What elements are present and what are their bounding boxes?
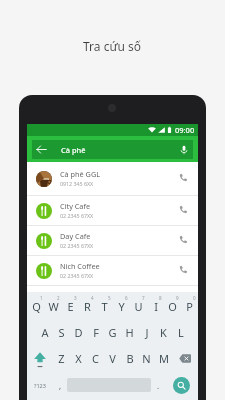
staticText: T xyxy=(101,299,108,314)
button[interactable]: J xyxy=(138,319,155,345)
staticText: B xyxy=(126,351,134,366)
staticText: U xyxy=(134,299,143,314)
button[interactable]: 0 xyxy=(181,293,198,319)
button[interactable]: C xyxy=(87,345,104,372)
staticText: 0 xyxy=(193,295,196,301)
staticText: W xyxy=(48,299,59,314)
staticText: N xyxy=(142,351,151,366)
staticText: 3 xyxy=(74,295,77,301)
button[interactable]: Shift xyxy=(27,345,53,372)
button[interactable]: 5 xyxy=(96,293,113,319)
button[interactable]: V xyxy=(104,345,121,372)
staticText: Cà phê xyxy=(61,145,86,155)
staticText: M xyxy=(159,351,169,366)
button[interactable]: Search xyxy=(173,377,190,394)
button[interactable]: N xyxy=(138,345,155,372)
button[interactable]: L xyxy=(172,319,189,345)
staticText: Z xyxy=(58,351,65,366)
button[interactable]: 8 xyxy=(147,293,164,319)
staticText: E xyxy=(67,299,74,314)
button[interactable]: Call xyxy=(174,260,192,278)
button[interactable]: 9 xyxy=(164,293,181,319)
staticText: 5 xyxy=(108,295,111,301)
staticText: I xyxy=(154,299,158,314)
staticText: 8 xyxy=(159,295,162,301)
staticText: J xyxy=(145,325,149,340)
button[interactable]: Cà phê GGL xyxy=(27,162,198,196)
button[interactable]: B xyxy=(121,345,138,372)
button[interactable]: K xyxy=(155,319,172,345)
button[interactable]: F xyxy=(87,319,104,345)
button[interactable]: Day Cafe xyxy=(27,226,198,256)
staticText: 2 xyxy=(57,295,60,301)
staticText: Q xyxy=(32,299,41,314)
button[interactable]: 2 xyxy=(45,293,62,319)
button[interactable]: 7 xyxy=(130,293,147,319)
staticText: 0912 345 6XX xyxy=(60,180,94,187)
button[interactable]: 3 xyxy=(62,293,79,319)
staticText: O xyxy=(168,299,177,314)
button[interactable]: . xyxy=(151,375,165,395)
button[interactable]: Call xyxy=(174,168,192,186)
button[interactable]: 4 xyxy=(79,293,96,319)
staticText: P xyxy=(186,299,193,314)
staticText: X xyxy=(75,351,82,366)
button[interactable]: Voice search xyxy=(174,140,193,159)
button[interactable]: Z xyxy=(53,345,70,372)
staticText: A xyxy=(41,325,49,340)
staticText: Nich Coffee xyxy=(60,261,100,271)
staticText: R xyxy=(84,299,91,314)
button[interactable]: H xyxy=(121,319,138,345)
staticText: 02 2345 67XX xyxy=(60,272,94,279)
staticText: 02 2345 67XX xyxy=(60,242,94,249)
button[interactable]: 6 xyxy=(113,293,130,319)
staticText: G xyxy=(108,325,117,340)
staticText: . xyxy=(157,380,160,391)
staticText: Y xyxy=(118,299,125,314)
staticText: 02 2345 67XX xyxy=(60,212,94,219)
button[interactable]: Call xyxy=(174,230,192,248)
button[interactable]: S xyxy=(53,319,70,345)
button[interactable]: Backspace xyxy=(172,345,198,372)
staticText: City Cafe xyxy=(60,201,91,211)
button[interactable]: Call xyxy=(174,200,192,218)
button[interactable]: Back xyxy=(32,140,51,159)
staticText: ?123 xyxy=(34,382,46,389)
staticText: 09:00 xyxy=(175,125,195,135)
button[interactable]: 1 xyxy=(27,293,45,319)
button[interactable]: D xyxy=(70,319,87,345)
staticText: D xyxy=(74,325,83,340)
staticText: 7 xyxy=(142,295,145,301)
staticText: H xyxy=(125,325,134,340)
button[interactable]: G xyxy=(104,319,121,345)
button[interactable]: , xyxy=(53,375,67,395)
staticText: 9 xyxy=(176,295,179,301)
staticText: C xyxy=(92,351,99,366)
staticText: Tra cứu số xyxy=(83,38,142,54)
staticText: 4 xyxy=(91,295,94,301)
staticText: 1 xyxy=(40,295,43,301)
button[interactable]: A xyxy=(36,319,53,345)
button[interactable]: City Cafe xyxy=(27,196,198,226)
staticText: V xyxy=(109,351,116,366)
staticText: , xyxy=(59,380,62,391)
staticText: S xyxy=(58,325,65,340)
staticText: L xyxy=(178,325,184,340)
button[interactable]: M xyxy=(155,345,172,372)
staticText: F xyxy=(93,325,99,340)
button[interactable]: X xyxy=(70,345,87,372)
button[interactable]: ?123 xyxy=(27,375,53,395)
staticText: 6 xyxy=(125,295,128,301)
staticText: Cà phê GGL xyxy=(60,169,101,179)
button[interactable]: Nich Coffee xyxy=(27,256,198,286)
staticText: Day Cafe xyxy=(60,231,91,241)
staticText: K xyxy=(160,325,167,340)
